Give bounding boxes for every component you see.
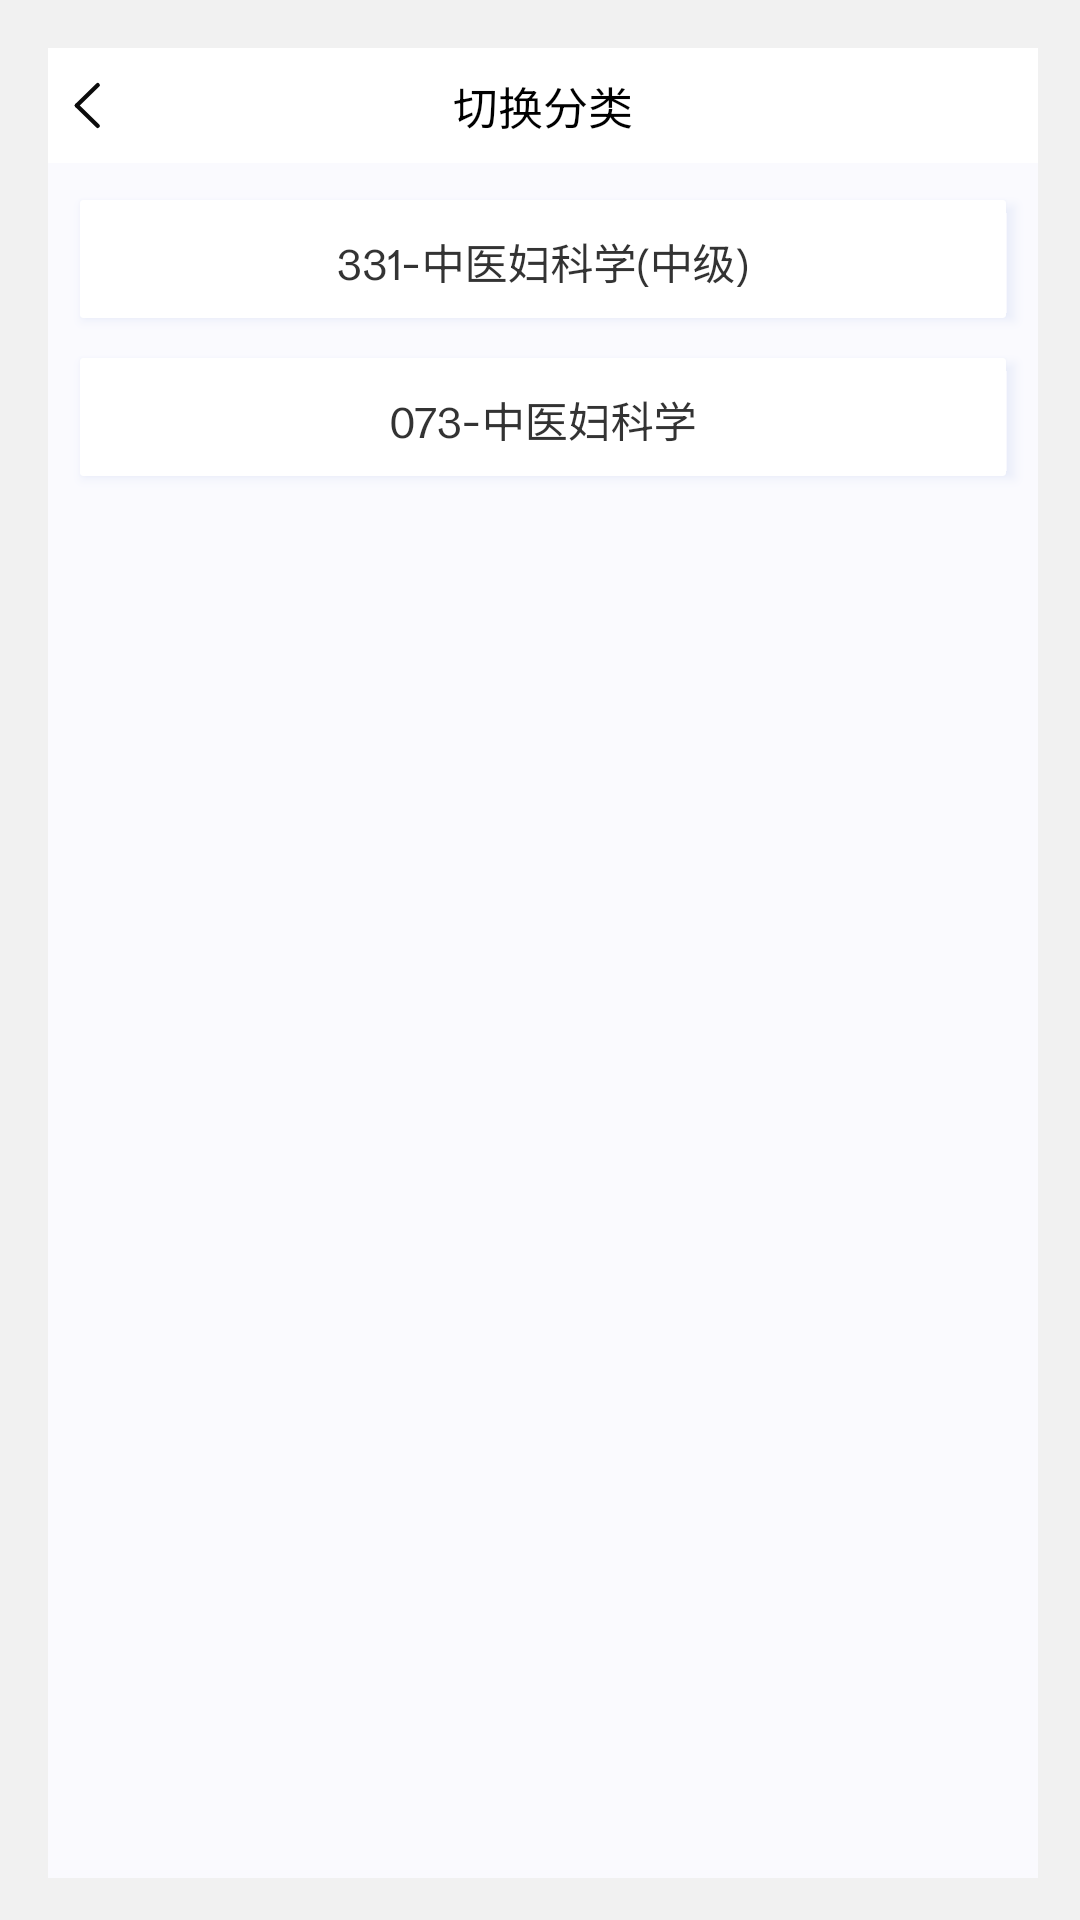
staticText: 073-中医妇科学 [389, 388, 697, 450]
staticText: 切换分类 [453, 73, 634, 138]
button[interactable]: 331-中医妇科学(中级) [80, 200, 1006, 318]
staticText: 331-中医妇科学(中级) [337, 230, 749, 292]
button[interactable]: Back [48, 48, 130, 163]
button[interactable]: 073-中医妇科学 [80, 358, 1006, 476]
